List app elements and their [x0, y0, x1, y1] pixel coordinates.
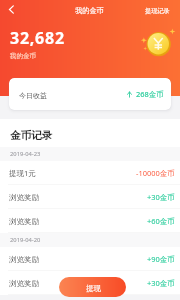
staticText: 我的金币 [75, 6, 104, 15]
staticText: 提现 [86, 284, 101, 293]
button[interactable]: Back [2, 0, 21, 19]
staticText: 提现1元 [9, 168, 36, 178]
staticText: 2019-04-23 [10, 150, 41, 158]
staticText: 268金币 [136, 89, 164, 99]
staticText: 32,682 [10, 27, 65, 49]
staticText: 今日收益 [19, 91, 47, 100]
staticText: 2019-04-20 [10, 236, 41, 244]
staticText: -10000金币 [136, 168, 175, 178]
staticText: 浏览奖励 [9, 279, 39, 288]
button[interactable]: 浏览奖励 [0, 271, 180, 295]
staticText: 浏览奖励 [9, 217, 39, 226]
staticText: +90金币 [147, 254, 175, 264]
button[interactable]: 浏览奖励 [0, 247, 180, 271]
staticText: 浏览奖励 [9, 193, 39, 202]
staticText: +60金币 [147, 216, 175, 226]
staticText: 浏览奖励 [9, 255, 39, 264]
staticText: 提现记录 [145, 7, 170, 15]
button[interactable]: 提现 [59, 277, 126, 297]
button[interactable]: 今日收益 [9, 78, 171, 110]
staticText: +30金币 [147, 278, 175, 288]
button[interactable]: 提现1元 [0, 161, 180, 185]
staticText: +30金币 [147, 192, 175, 202]
button[interactable]: 浏览奖励 [0, 209, 180, 233]
button[interactable]: 提现记录 [134, 3, 180, 19]
staticText: 我的金币 [10, 52, 36, 60]
button[interactable]: 浏览奖励 [0, 185, 180, 209]
staticText: 金币记录 [10, 129, 52, 142]
